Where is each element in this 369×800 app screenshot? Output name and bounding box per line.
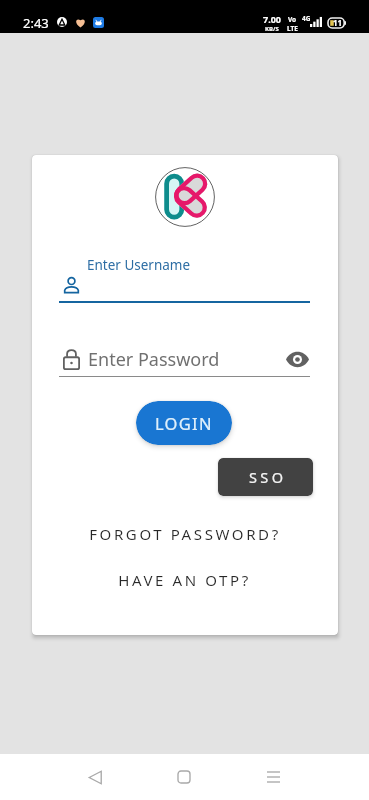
staticText: SSO	[249, 467, 287, 487]
button[interactable]: Home	[166, 759, 202, 795]
staticText: 7.00	[263, 13, 281, 25]
staticText: KB/S	[265, 25, 279, 33]
staticText: HAVE AN OTP?	[118, 570, 251, 590]
button[interactable]: SSO	[218, 458, 313, 496]
staticText: Vo	[288, 15, 297, 24]
staticText: 2:43	[23, 14, 49, 32]
button[interactable]: FORGOT PASSWORD?	[72, 522, 297, 546]
staticText: LTE	[287, 24, 298, 33]
staticText: Enter Password	[88, 347, 220, 372]
button[interactable]: Show password	[286, 352, 309, 367]
staticText: 11	[333, 17, 343, 28]
staticText: Enter Username	[87, 256, 191, 274]
staticText: FORGOT PASSWORD?	[89, 524, 281, 544]
button[interactable]: Back	[77, 759, 113, 795]
button[interactable]: Recent apps	[255, 759, 291, 795]
staticText: LOGIN	[155, 412, 213, 434]
staticText: 4G	[302, 14, 311, 23]
button[interactable]: HAVE AN OTP?	[72, 568, 297, 592]
button[interactable]: LOGIN	[136, 401, 232, 445]
